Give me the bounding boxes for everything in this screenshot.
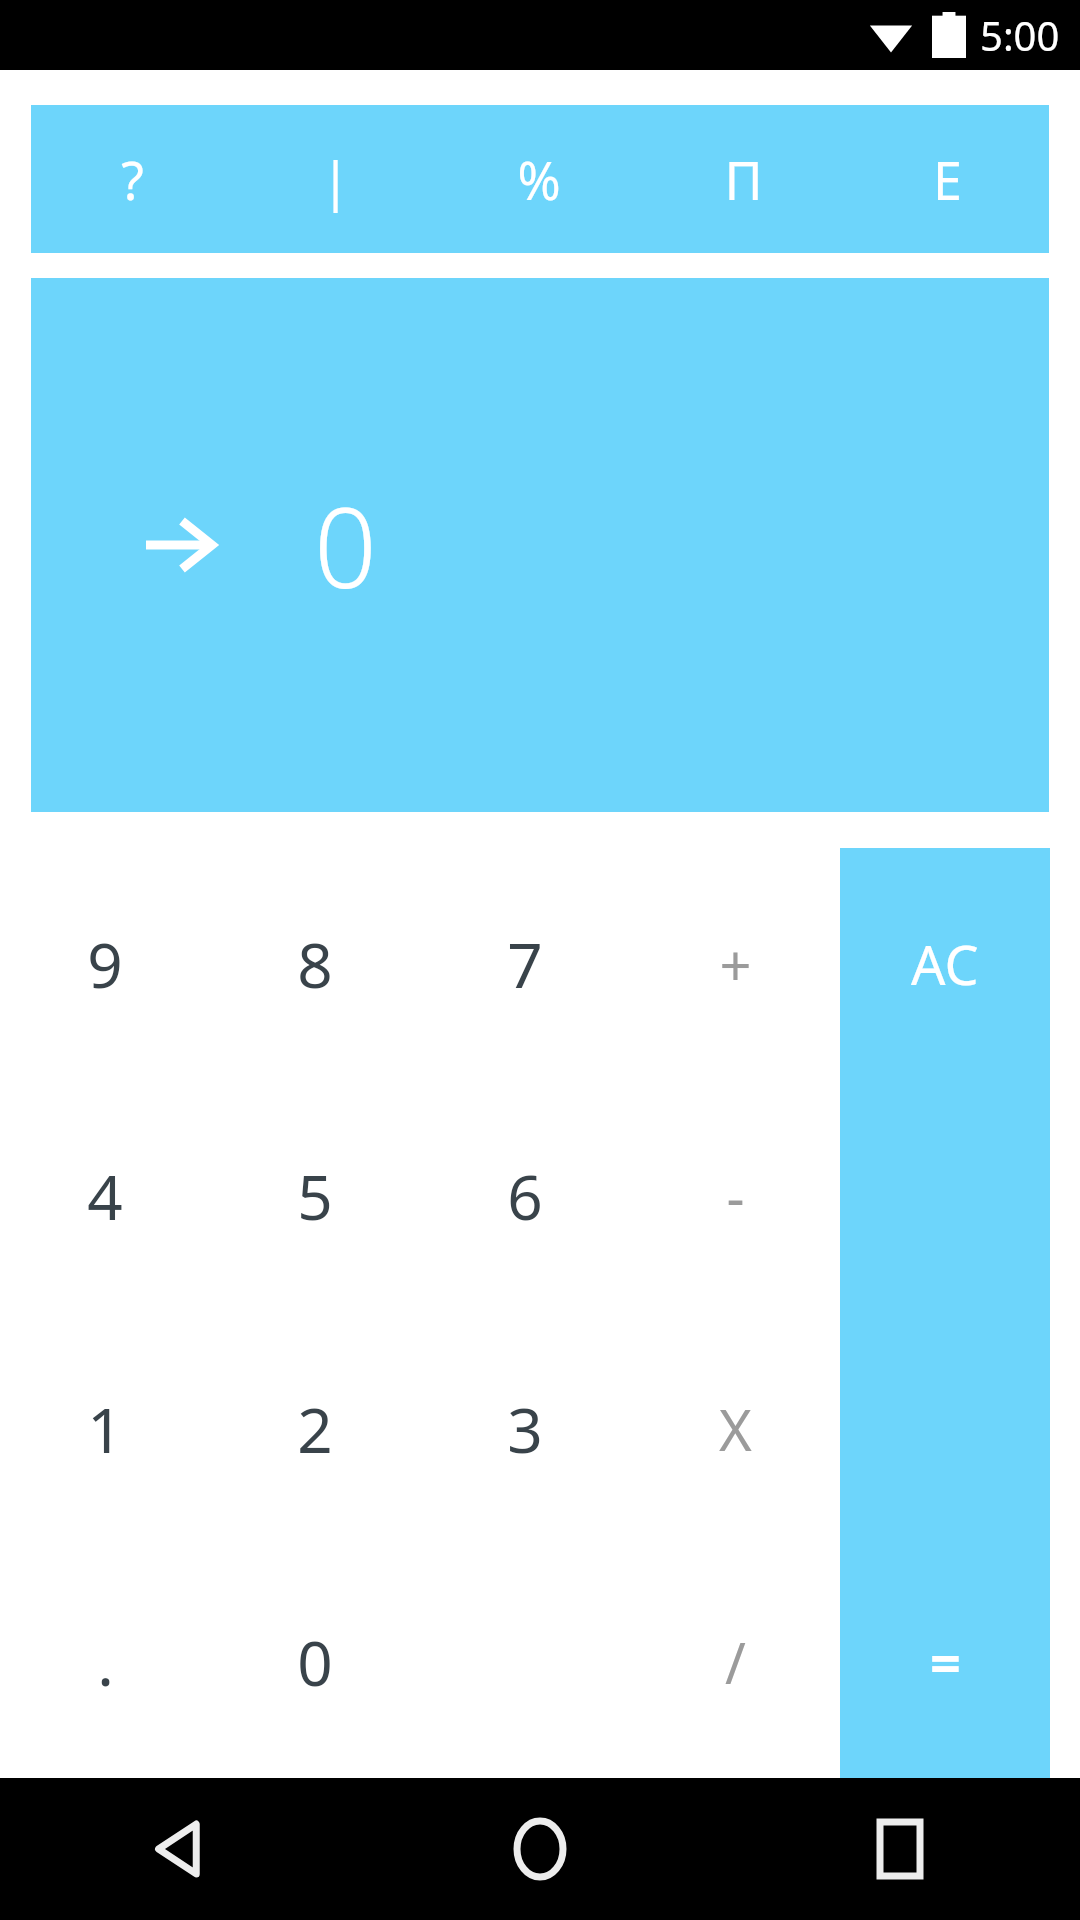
- button[interactable]: 5: [210, 1080, 420, 1312]
- staticText: 8: [297, 922, 333, 1006]
- staticText: E: [933, 144, 962, 215]
- staticText: 5: [297, 1154, 333, 1238]
- button[interactable]: 9: [0, 848, 210, 1080]
- staticText: 5:00: [980, 8, 1060, 62]
- button[interactable]: Recent apps: [720, 1778, 1080, 1920]
- staticText: 4: [87, 1154, 123, 1238]
- staticText: П: [724, 144, 763, 215]
- staticText: ?: [121, 144, 144, 215]
- staticText: 7: [507, 922, 543, 1006]
- button[interactable]: ?: [31, 105, 234, 253]
- button[interactable]: 7: [420, 848, 630, 1080]
- button[interactable]: +: [630, 848, 840, 1080]
- button[interactable]: E: [845, 105, 1049, 253]
- button[interactable]: 4: [0, 1080, 210, 1312]
- staticText: 0: [314, 470, 377, 620]
- staticText: +: [719, 926, 752, 1002]
- button[interactable]: |: [234, 105, 437, 253]
- staticText: =: [930, 1625, 961, 1699]
- staticText: /: [725, 1624, 746, 1700]
- staticText: 0: [297, 1620, 333, 1704]
- button[interactable]: 2: [210, 1312, 420, 1545]
- staticText: %: [517, 144, 561, 215]
- button[interactable]: 8: [210, 848, 420, 1080]
- button[interactable]: -: [630, 1080, 840, 1312]
- button[interactable]: П: [641, 105, 845, 253]
- staticText: 3: [507, 1387, 543, 1471]
- button[interactable]: Next: [31, 278, 1049, 812]
- staticText: .: [97, 1620, 114, 1704]
- button[interactable]: =: [840, 1545, 1050, 1778]
- staticText: 9: [87, 922, 123, 1006]
- button[interactable]: /: [630, 1545, 840, 1778]
- staticText: 6: [507, 1154, 543, 1238]
- button[interactable]: AC: [840, 848, 1050, 1080]
- button[interactable]: .: [0, 1545, 210, 1778]
- staticText: X: [719, 1391, 752, 1467]
- staticText: AC: [911, 927, 979, 1001]
- button[interactable]: 0: [210, 1545, 420, 1778]
- button[interactable]: Back: [0, 1778, 360, 1920]
- button[interactable]: 1: [0, 1312, 210, 1545]
- staticText: |: [321, 144, 350, 215]
- button[interactable]: Home: [360, 1778, 720, 1920]
- staticText: 1: [87, 1387, 123, 1471]
- other: Next: [144, 515, 214, 575]
- staticText: -: [726, 1158, 745, 1234]
- button[interactable]: X: [630, 1312, 840, 1545]
- staticText: 2: [297, 1387, 333, 1471]
- button[interactable]: %: [437, 105, 641, 253]
- button[interactable]: 6: [420, 1080, 630, 1312]
- button[interactable]: 3: [420, 1312, 630, 1545]
